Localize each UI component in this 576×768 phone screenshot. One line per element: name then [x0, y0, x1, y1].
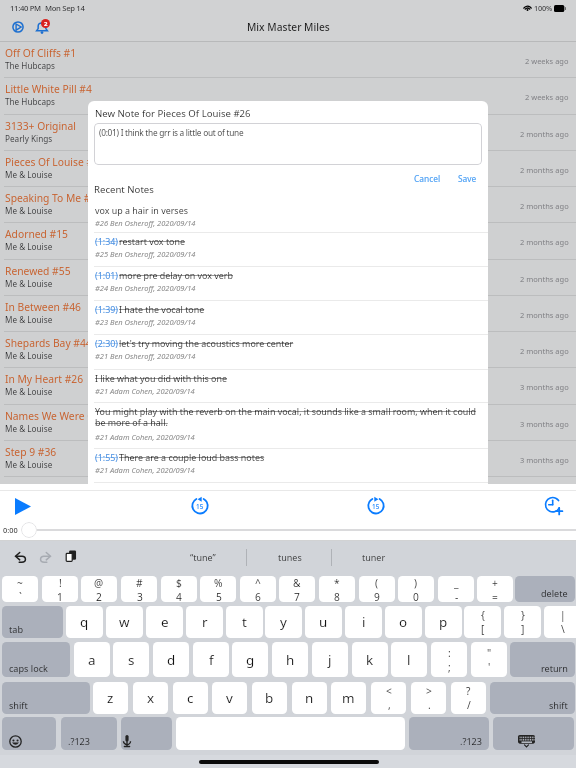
button[interactable]: >	[411, 682, 446, 714]
button[interactable]: k	[352, 642, 388, 677]
button[interactable]: Cancel	[410, 171, 445, 186]
button[interactable]: u	[305, 606, 342, 638]
button[interactable]: +	[477, 576, 513, 602]
button[interactable]: tab	[2, 606, 63, 638]
button[interactable]: .?123	[409, 717, 489, 750]
button[interactable]: Shepards Bay #44	[0, 332, 576, 368]
staticText: #	[136, 576, 143, 590]
button[interactable]: &	[279, 576, 315, 602]
button[interactable]: %	[200, 576, 236, 602]
button[interactable]: #	[121, 576, 157, 602]
button[interactable]: t	[226, 606, 263, 638]
button[interactable]: :	[431, 642, 467, 677]
button[interactable]: Paste	[65, 550, 77, 562]
button[interactable]: y	[265, 606, 302, 638]
button[interactable]: Forward 15 seconds	[366, 495, 386, 515]
button[interactable]: $	[161, 576, 197, 602]
staticText: 6	[255, 590, 261, 602]
button[interactable]: Redo	[39, 551, 52, 564]
button[interactable]: Off Of Cliffs #1	[0, 42, 576, 78]
button[interactable]: e	[146, 606, 183, 638]
button[interactable]: w	[106, 606, 143, 638]
button[interactable]: (1:01)	[88, 267, 488, 301]
button[interactable]: 3133+ Original	[0, 115, 576, 151]
button[interactable]: |	[544, 606, 576, 638]
button[interactable]: I like what you did with this one	[88, 370, 488, 403]
button[interactable]: Notifications	[34, 19, 50, 35]
button[interactable]: Speaking To Me #40	[0, 187, 576, 223]
button[interactable]: j	[312, 642, 348, 677]
button[interactable]: v	[212, 682, 247, 714]
button[interactable]: (2:30)	[88, 335, 488, 370]
button[interactable]: s	[113, 642, 149, 677]
button[interactable]: !	[42, 576, 78, 602]
button[interactable]: z	[93, 682, 128, 714]
button[interactable]: Adorned #15	[0, 223, 576, 259]
button[interactable]: Little White Pill #4	[0, 78, 576, 114]
button[interactable]: Add timestamp	[543, 495, 563, 515]
staticText: )	[414, 576, 418, 590]
button[interactable]: p	[425, 606, 462, 638]
button[interactable]: Pieces Of Louise #26	[0, 151, 576, 187]
button[interactable]: i	[345, 606, 382, 638]
button[interactable]: g	[232, 642, 268, 677]
button[interactable]: Names We Were Given #3	[0, 405, 576, 441]
button[interactable]: Play all	[12, 21, 24, 33]
button[interactable]: <	[371, 682, 406, 714]
button[interactable]: *	[319, 576, 355, 602]
button[interactable]: h	[272, 642, 308, 677]
button[interactable]: Rewind 15 seconds	[190, 495, 210, 515]
button[interactable]: kb	[493, 717, 574, 750]
button[interactable]: {	[464, 606, 501, 638]
button[interactable]: In My Heart #26	[0, 368, 576, 404]
button[interactable]: ~	[2, 576, 38, 602]
button[interactable]: shift	[2, 682, 90, 714]
button[interactable]: emoji	[2, 717, 56, 750]
button[interactable]: (1:39)	[88, 301, 488, 335]
staticText: ;	[448, 660, 451, 674]
button[interactable]: Step 9 #36	[0, 441, 576, 477]
button[interactable]: shift	[490, 682, 575, 714]
button[interactable]: c	[173, 682, 208, 714]
button[interactable]: (	[359, 576, 395, 602]
button[interactable]: You might play with the reverb on the ma…	[88, 403, 488, 449]
button[interactable]: (1:34)	[88, 233, 488, 267]
button[interactable]: “tune”	[161, 543, 245, 571]
button[interactable]: )	[398, 576, 434, 602]
button[interactable]: q	[66, 606, 103, 638]
button[interactable]: Renewed #55	[0, 260, 576, 296]
button[interactable]: @	[81, 576, 117, 602]
button[interactable]: "	[471, 642, 507, 677]
button[interactable]: d	[153, 642, 189, 677]
button[interactable]: mic	[121, 717, 172, 750]
staticText: 1	[57, 590, 63, 602]
button[interactable]: }	[504, 606, 541, 638]
button[interactable]: tunes	[248, 543, 332, 571]
staticText: -	[455, 590, 459, 602]
button[interactable]: Play	[12, 495, 34, 517]
button[interactable]: m	[331, 682, 366, 714]
button[interactable]: caps lock	[2, 642, 70, 677]
button[interactable]: o	[385, 606, 422, 638]
button[interactable]: a	[74, 642, 110, 677]
staticText: Me & Louise	[5, 386, 53, 397]
button[interactable]: delete	[515, 576, 575, 602]
button[interactable]: n	[292, 682, 327, 714]
button[interactable]: In Between #46	[0, 296, 576, 332]
button[interactable]: b	[252, 682, 287, 714]
button[interactable]: _	[438, 576, 474, 602]
button[interactable]: ?	[451, 682, 486, 714]
button[interactable]: r	[186, 606, 223, 638]
button[interactable]: (1:55)	[88, 449, 488, 483]
button[interactable]: ^	[240, 576, 276, 602]
button[interactable]: Save	[454, 171, 481, 186]
button[interactable]: Undo	[14, 551, 27, 564]
button[interactable]: f	[193, 642, 229, 677]
button[interactable]: .?123	[61, 717, 117, 750]
button[interactable]: vox up a hair in verses	[88, 202, 488, 233]
button[interactable]: return	[510, 642, 575, 677]
button[interactable]: x	[133, 682, 168, 714]
button[interactable]: tuner	[332, 543, 416, 571]
button[interactable]: l	[391, 642, 427, 677]
